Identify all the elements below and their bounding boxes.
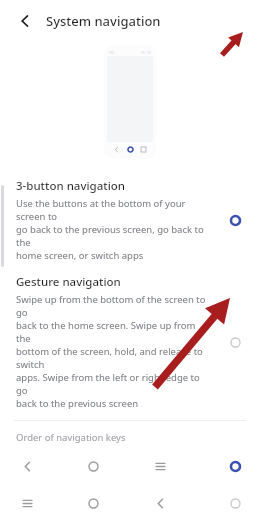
button[interactable]: Back: [12, 8, 38, 34]
button[interactable]: 3-button navigation: [0, 172, 260, 268]
button[interactable]: Not selected: [222, 329, 248, 355]
staticText: Order of navigation keys: [16, 431, 126, 444]
staticText: System navigation: [46, 12, 161, 30]
button[interactable]: Not selected: [0, 486, 260, 520]
button[interactable]: Selected: [222, 207, 248, 233]
staticText: Swipe up from the bottom of the screen t…: [16, 293, 212, 410]
staticText: Gesture navigation: [16, 274, 121, 290]
button[interactable]: Selected: [0, 446, 260, 486]
button[interactable]: Selected: [222, 453, 248, 479]
button[interactable]: Gesture navigation: [0, 268, 260, 416]
button[interactable]: Not selected: [222, 490, 248, 516]
staticText: 3-button navigation: [16, 178, 126, 194]
staticText: Use the buttons at the bottom of your sc…: [16, 197, 212, 262]
